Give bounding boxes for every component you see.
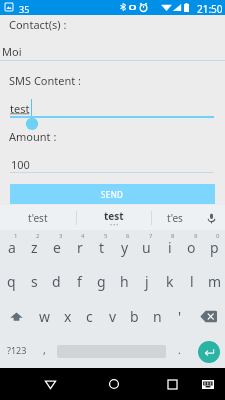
button[interactable]: n [146, 299, 169, 334]
staticText: g [97, 272, 106, 291]
staticText: 8 [171, 232, 175, 240]
staticText: 4 [81, 232, 85, 240]
button[interactable]: k [158, 265, 181, 300]
button[interactable]: test [77, 205, 151, 231]
button[interactable]: r [68, 230, 91, 265]
staticText: r [77, 238, 83, 257]
button[interactable]: l [180, 265, 203, 300]
staticText: test [10, 101, 30, 116]
staticText: h [120, 272, 129, 291]
staticText: s [31, 272, 38, 291]
staticText: m [208, 272, 222, 291]
staticText: e [53, 238, 61, 257]
staticText: t [99, 238, 105, 257]
staticText: o [187, 238, 196, 257]
button[interactable]: b [123, 299, 146, 334]
button[interactable]: v [101, 299, 124, 334]
button[interactable]: Change keyboard [194, 368, 222, 400]
button[interactable]: , [33, 334, 56, 369]
staticText: 21:50 [197, 2, 223, 16]
staticText: v [109, 307, 117, 326]
staticText: u [142, 238, 151, 257]
staticText: a [8, 238, 16, 257]
staticText: 35 [19, 3, 30, 15]
button[interactable]: Recent apps [158, 368, 186, 400]
staticText: t'est [28, 211, 48, 225]
staticText: n [153, 307, 162, 326]
button[interactable]: f [68, 265, 91, 300]
button[interactable]: x [56, 299, 79, 334]
button[interactable]: a [0, 230, 23, 265]
button[interactable]: ?123 [0, 334, 33, 369]
staticText: ' [178, 307, 182, 326]
staticText: d [52, 272, 61, 291]
staticText: • • • [110, 222, 119, 229]
staticText: j [145, 272, 149, 291]
staticText: 100 [11, 157, 30, 172]
button[interactable]: t'est [0, 205, 76, 231]
button[interactable]: Home [100, 368, 128, 400]
staticText: k [166, 272, 174, 291]
button[interactable]: Backspace [191, 299, 225, 334]
button[interactable] [56, 334, 166, 369]
staticText: c [86, 307, 93, 326]
staticText: 0 [216, 232, 220, 240]
staticText: . [178, 342, 181, 357]
button[interactable]: m [203, 265, 225, 300]
button[interactable]: g [90, 265, 113, 300]
staticText: b [130, 307, 139, 326]
staticText: t'es [167, 211, 183, 225]
staticText: 2 [36, 232, 40, 240]
staticText: 6 [126, 232, 130, 240]
staticText: w [39, 307, 51, 326]
button[interactable]: ' [168, 299, 191, 334]
button[interactable]: e [45, 230, 68, 265]
staticText: 1 [14, 232, 18, 240]
button[interactable]: t [90, 230, 113, 265]
staticText: 3 [59, 232, 63, 240]
button[interactable]: q [0, 265, 23, 300]
button[interactable]: Enter [190, 334, 225, 369]
staticText: f [77, 272, 82, 291]
staticText: z [31, 238, 38, 257]
button[interactable]: y [113, 230, 136, 265]
button[interactable]: t'es [152, 205, 198, 231]
button[interactable]: w [33, 299, 56, 334]
button[interactable]: s [23, 265, 46, 300]
staticText: x [64, 307, 72, 326]
button[interactable]: Voice input [198, 205, 225, 231]
staticText: , [43, 342, 46, 357]
button[interactable]: o [180, 230, 203, 265]
staticText: 9 [194, 232, 198, 240]
button[interactable]: j [135, 265, 158, 300]
staticText: 5 [104, 232, 108, 240]
staticText: 7 [149, 232, 153, 240]
staticText: Moi [2, 44, 22, 59]
button[interactable]: c [78, 299, 101, 334]
button[interactable]: u [135, 230, 158, 265]
button[interactable]: z [23, 230, 46, 265]
button[interactable]: p [203, 230, 225, 265]
staticText: y [121, 238, 129, 257]
button[interactable]: i [158, 230, 181, 265]
button[interactable]: h [113, 265, 136, 300]
button[interactable]: Shift [0, 299, 33, 334]
staticText: p [210, 238, 219, 257]
staticText: ?123 [7, 344, 27, 356]
staticText: test [104, 209, 124, 223]
staticText: i [168, 238, 172, 257]
staticText: SMS Content : [9, 73, 82, 88]
staticText: Amount : [9, 129, 57, 144]
button[interactable]: SEND [10, 184, 215, 204]
staticText: SEND [101, 189, 124, 200]
staticText: l [190, 272, 194, 291]
button[interactable]: d [45, 265, 68, 300]
button[interactable]: . [168, 334, 190, 369]
staticText: q [7, 272, 16, 291]
staticText: Contact(s) : [9, 17, 67, 32]
button[interactable]: Back [36, 368, 64, 400]
